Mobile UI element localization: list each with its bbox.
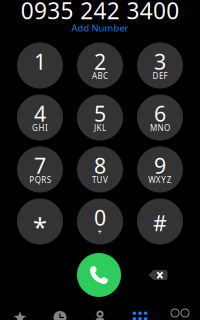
button[interactable]: Voicemail [160, 309, 200, 320]
staticText: DEF [152, 71, 168, 81]
staticText: ABC [92, 71, 108, 81]
button[interactable]: 0 [77, 198, 123, 244]
button[interactable]: 4 [17, 94, 63, 140]
staticText: TUV [92, 175, 108, 185]
staticText: PQRS [29, 175, 51, 185]
staticText: 3 [154, 47, 166, 76]
staticText: 9 [154, 151, 166, 180]
button[interactable]: # [137, 198, 183, 244]
staticText: 0935 242 3400 [21, 0, 179, 26]
staticText: 0 [94, 203, 106, 232]
staticText: * [33, 209, 47, 244]
button[interactable]: Add Number [65, 21, 135, 35]
button[interactable]: 3 [137, 42, 183, 88]
button[interactable]: 8 [77, 146, 123, 192]
button[interactable]: Recents [40, 311, 80, 320]
button[interactable]: 7 [17, 146, 63, 192]
staticText: 6 [154, 99, 166, 128]
button[interactable]: 6 [137, 94, 183, 140]
button[interactable]: 9 [137, 146, 183, 192]
staticText: # [153, 208, 167, 238]
staticText: 8 [94, 151, 106, 180]
staticText: Add Number [71, 22, 128, 34]
staticText: + [97, 227, 102, 237]
staticText: WXYZ [148, 175, 172, 185]
staticText: GHI [32, 123, 48, 133]
button[interactable]: Call [77, 253, 121, 297]
button[interactable]: * [17, 198, 63, 244]
button[interactable]: 1 [17, 42, 63, 88]
staticText: 7 [34, 151, 46, 180]
button[interactable]: Delete [141, 259, 175, 291]
staticText: 4 [34, 99, 46, 128]
staticText: 1 [34, 47, 46, 76]
button[interactable]: 5 [77, 94, 123, 140]
staticText: JKL [94, 123, 106, 133]
button[interactable]: Favorites [0, 311, 40, 320]
button[interactable]: Keypad [120, 311, 160, 320]
button[interactable]: Contacts [80, 310, 120, 320]
staticText: MNO [150, 123, 170, 133]
button[interactable]: 2 [77, 42, 123, 88]
staticText: 5 [94, 99, 106, 128]
staticText: 2 [94, 47, 106, 76]
